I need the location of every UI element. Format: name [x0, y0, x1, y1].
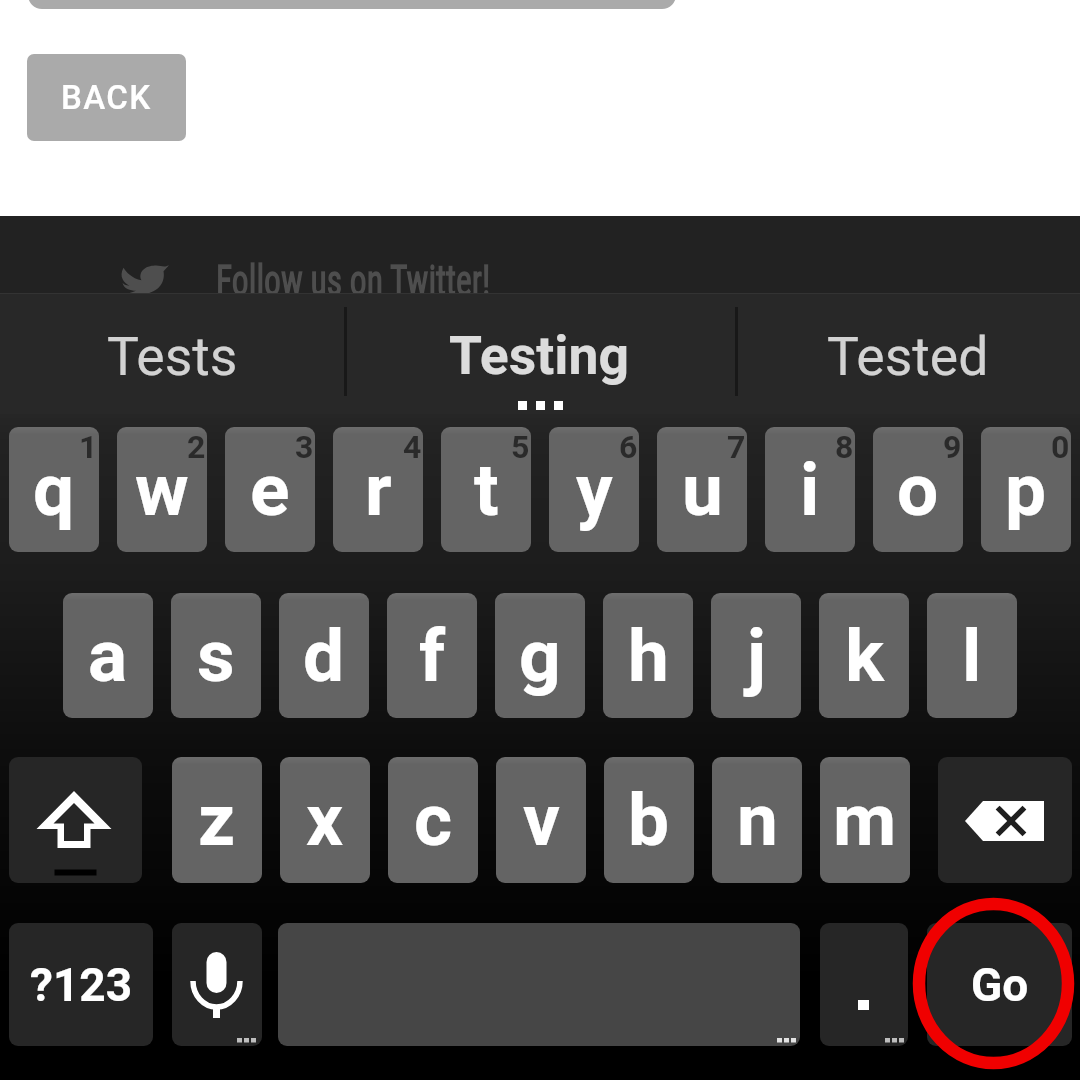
staticText: 1: [79, 428, 98, 466]
staticText: t: [474, 447, 499, 533]
staticText: Tested: [827, 325, 989, 388]
staticText: p: [1005, 447, 1047, 533]
staticText: j: [747, 613, 766, 699]
staticText: d: [303, 613, 345, 699]
button[interactable]: Testing: [344, 293, 735, 414]
staticText: 9: [943, 428, 962, 466]
button[interactable]: Go: [927, 923, 1072, 1046]
staticText: Testing: [449, 324, 630, 387]
staticText: q: [33, 447, 75, 533]
staticText: Follow us on Twitter!: [216, 256, 490, 305]
staticText: Tests: [107, 325, 238, 388]
staticText: 4: [403, 428, 422, 466]
button[interactable]: k: [819, 593, 909, 718]
staticText: h: [628, 613, 669, 699]
staticText: 0: [1051, 428, 1070, 466]
button[interactable]: n: [712, 757, 802, 883]
staticText: e: [250, 447, 290, 533]
button[interactable]: p: [981, 427, 1071, 552]
button[interactable]: Tests: [0, 293, 344, 414]
staticText: m: [833, 777, 897, 863]
button[interactable]: l: [927, 593, 1017, 718]
button[interactable]: w: [117, 427, 207, 552]
staticText: 8: [835, 428, 854, 466]
button[interactable]: y: [549, 427, 639, 552]
button[interactable]: d: [279, 593, 369, 718]
button[interactable]: c: [388, 757, 478, 883]
button[interactable]: f: [387, 593, 477, 718]
staticText: l: [962, 613, 982, 699]
staticText: w: [135, 447, 189, 533]
button[interactable]: Tested: [735, 293, 1080, 414]
button[interactable]: t: [441, 427, 531, 552]
staticText: a: [88, 613, 128, 699]
staticText: s: [197, 613, 235, 699]
staticText: 3: [295, 428, 314, 466]
button[interactable]: Backspace: [938, 757, 1072, 883]
button[interactable]: h: [603, 593, 693, 718]
staticText: x: [306, 777, 344, 863]
button[interactable]: b: [604, 757, 694, 883]
staticText: z: [198, 777, 236, 863]
button[interactable]: BACK: [27, 54, 186, 141]
staticText: k: [845, 613, 884, 699]
button[interactable]: r: [333, 427, 423, 552]
staticText: 6: [619, 428, 638, 466]
button[interactable]: i: [765, 427, 855, 552]
button[interactable]: Shift: [9, 757, 142, 883]
staticText: ?123: [30, 958, 133, 1012]
staticText: Go: [971, 958, 1029, 1012]
button[interactable]: v: [496, 757, 586, 883]
staticText: 7: [727, 428, 746, 466]
staticText: n: [737, 777, 778, 863]
button[interactable]: a: [63, 593, 153, 718]
button[interactable]: s: [171, 593, 261, 718]
staticText: y: [576, 447, 613, 533]
button[interactable]: x: [280, 757, 370, 883]
button[interactable]: o: [873, 427, 963, 552]
button[interactable]: Period: [820, 923, 908, 1046]
button[interactable]: z: [172, 757, 262, 883]
staticText: 2: [187, 428, 206, 466]
staticText: 5: [511, 428, 530, 466]
button[interactable]: g: [495, 593, 585, 718]
button[interactable]: m: [820, 757, 910, 883]
staticText: b: [628, 777, 670, 863]
staticText: BACK: [61, 78, 152, 117]
staticText: o: [897, 447, 939, 533]
button[interactable]: Space: [278, 923, 800, 1046]
staticText: i: [800, 447, 820, 533]
button[interactable]: Voice input: [172, 923, 262, 1046]
button[interactable]: q: [9, 427, 99, 552]
staticText: g: [519, 613, 561, 699]
button[interactable]: ?123: [9, 923, 153, 1046]
button[interactable]: u: [657, 427, 747, 552]
staticText: r: [365, 447, 392, 533]
staticText: c: [414, 777, 453, 863]
staticText: u: [682, 447, 723, 533]
staticText: v: [523, 777, 560, 863]
staticText: f: [419, 613, 446, 699]
button[interactable]: e: [225, 427, 315, 552]
button[interactable]: j: [711, 593, 801, 718]
